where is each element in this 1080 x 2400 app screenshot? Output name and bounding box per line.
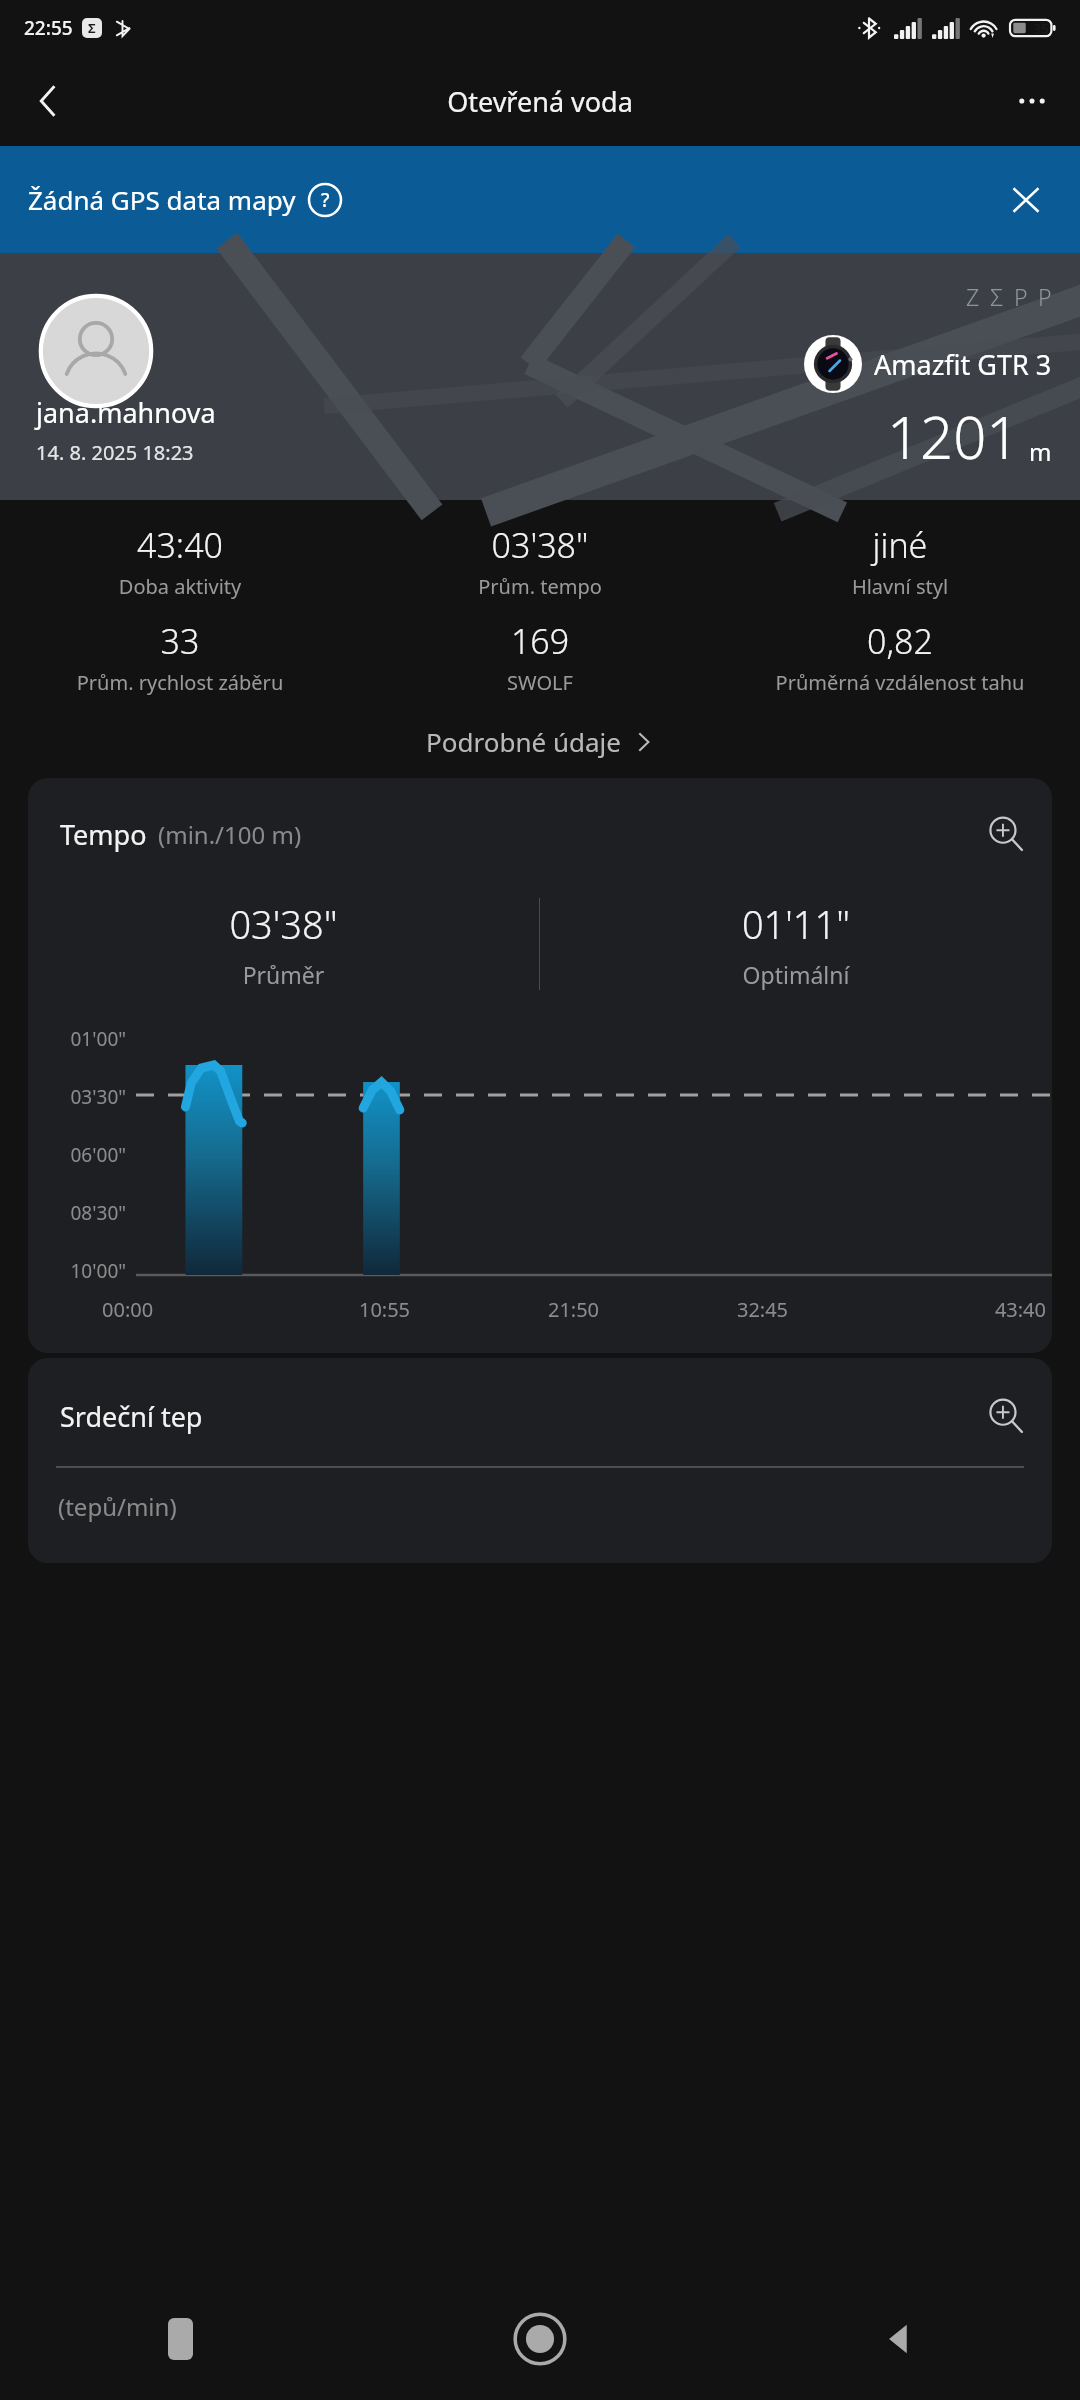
- staticText: 14. 8. 2025 18:23: [36, 439, 194, 466]
- button[interactable]: 169: [360, 618, 720, 696]
- button[interactable]: 03'38": [360, 522, 720, 600]
- staticText: (min./100 m): [158, 818, 302, 851]
- button[interactable]: More options: [998, 67, 1066, 135]
- staticText: m: [1029, 435, 1052, 468]
- staticText: 1201: [887, 397, 1020, 476]
- staticText: 0,82: [728, 618, 1072, 664]
- staticText: 35: [1033, 19, 1050, 38]
- button[interactable]: Recent apps: [0, 2278, 360, 2400]
- staticText: 43:40: [8, 522, 352, 568]
- staticText: 00:00: [102, 1296, 290, 1323]
- staticText: 33: [8, 618, 352, 664]
- staticText: 43:40: [857, 1296, 1046, 1323]
- staticText: Hlavní styl: [728, 573, 1072, 600]
- button[interactable]: jiné: [720, 522, 1080, 600]
- staticText: 03'38": [368, 522, 712, 568]
- staticText: 32:45: [668, 1296, 857, 1323]
- staticText: 21:50: [479, 1296, 668, 1323]
- staticText: Tempo: [60, 816, 147, 853]
- staticText: (tepů/min): [58, 1490, 177, 1523]
- staticText: 06'00": [70, 1142, 126, 1168]
- staticText: P: [1038, 281, 1052, 312]
- staticText: Σ: [88, 19, 96, 37]
- button[interactable]: Podrobné údaje: [406, 714, 675, 769]
- button[interactable]: Tempo: [28, 778, 1052, 1353]
- staticText: Srdeční tep: [60, 1398, 203, 1435]
- staticText: Průměrná vzdálenost tahu: [728, 669, 1072, 696]
- staticText: 10:55: [290, 1296, 479, 1323]
- staticText: SWOLF: [368, 669, 712, 696]
- staticText: Σ: [990, 281, 1004, 312]
- staticText: 10'00": [70, 1258, 126, 1284]
- staticText: Prům. rychlost záběru: [8, 669, 352, 696]
- staticText: Z: [966, 281, 980, 312]
- button[interactable]: 33: [0, 618, 360, 696]
- button[interactable]: Žádná GPS data mapy: [0, 146, 1080, 253]
- staticText: 01'00": [70, 1026, 126, 1052]
- staticText: Prům. tempo: [368, 573, 712, 600]
- staticText: 03'38": [28, 898, 539, 950]
- button[interactable]: Srdeční tep: [28, 1358, 1052, 1563]
- staticText: Doba aktivity: [8, 573, 352, 600]
- button[interactable]: Home: [360, 2278, 720, 2400]
- staticText: P: [1014, 281, 1028, 312]
- staticText: Optimální: [540, 959, 1052, 990]
- button[interactable]: 43:40: [0, 522, 360, 600]
- staticText: 22:55: [24, 15, 73, 41]
- staticText: 169: [368, 618, 712, 664]
- staticText: ?: [321, 187, 330, 213]
- staticText: 08'30": [70, 1200, 126, 1226]
- staticText: Průměr: [28, 959, 539, 990]
- staticText: Žádná GPS data mapy: [28, 182, 296, 217]
- button[interactable]: Zoom in: [984, 812, 1028, 856]
- staticText: jana.mahnova: [36, 394, 216, 431]
- staticText: Otevřená voda: [447, 83, 633, 120]
- staticText: Podrobné údaje: [426, 724, 621, 759]
- button[interactable]: Back: [720, 2278, 1080, 2400]
- button[interactable]: Back: [14, 67, 82, 135]
- button[interactable]: 0,82: [720, 618, 1080, 696]
- staticText: jiné: [728, 522, 1072, 568]
- staticText: Amazfit GTR 3: [874, 346, 1052, 383]
- button[interactable]: Close: [994, 168, 1058, 232]
- button[interactable]: Zoom in: [984, 1394, 1028, 1438]
- staticText: 03'30": [70, 1084, 126, 1110]
- staticText: 01'11": [540, 898, 1052, 950]
- button[interactable]: Help: [308, 183, 342, 217]
